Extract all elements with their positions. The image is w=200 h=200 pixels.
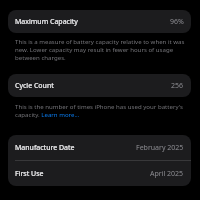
staticText: First Use	[15, 169, 44, 179]
staticText: February 2025	[136, 143, 184, 153]
button[interactable]: Maximum Capacity	[8, 10, 191, 33]
staticText: Cycle Count	[15, 81, 54, 91]
button[interactable]: Cycle Count	[8, 74, 191, 97]
staticText: 96%	[170, 17, 184, 27]
staticText: Manufacture Date	[15, 143, 75, 153]
staticText: Maximum Capacity	[15, 17, 78, 27]
staticText: 256	[171, 81, 184, 91]
staticText: This is the number of times iPhone has u…	[15, 102, 189, 118]
button[interactable]: Manufacture Date	[8, 135, 191, 160]
staticText: April 2025	[150, 169, 184, 179]
button[interactable]: First Use	[8, 161, 191, 186]
staticText: This is a measure of battery capacity re…	[15, 37, 189, 61]
